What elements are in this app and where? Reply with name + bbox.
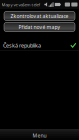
staticText: Zkontrolovat aktualizace — [10, 12, 68, 19]
button[interactable]: Česká republika — [0, 41, 79, 50]
button[interactable]: Menu — [0, 129, 79, 140]
staticText: Česká republika — [3, 42, 41, 49]
staticText: Mapy ve vašem telef — [1, 2, 39, 7]
staticText: Menu — [32, 132, 46, 139]
button[interactable]: Zkontrolovat aktualizace — [4, 11, 75, 20]
button[interactable]: Přidat nové mapy — [4, 22, 75, 31]
staticText: Přidat nové mapy — [18, 23, 60, 30]
